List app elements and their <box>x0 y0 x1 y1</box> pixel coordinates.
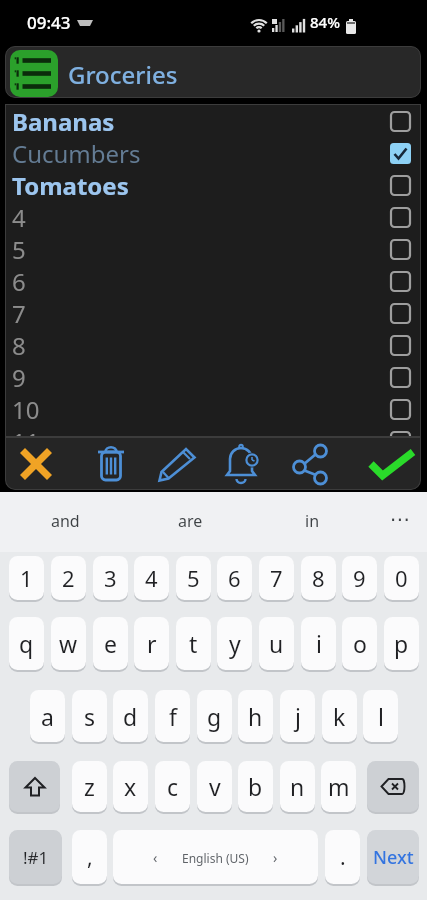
staticText: ⋯ <box>390 507 410 530</box>
button[interactable]: 7 <box>5 297 421 329</box>
staticText: 8 <box>12 329 26 361</box>
staticText: m <box>328 771 350 802</box>
button[interactable]: n <box>280 761 315 812</box>
button[interactable]: 6 <box>217 556 252 600</box>
button[interactable]: p <box>384 617 419 670</box>
button[interactable]: r <box>134 617 169 670</box>
staticText: n <box>290 771 305 802</box>
button[interactable]: !#1 <box>9 830 62 884</box>
button[interactable]: 6 <box>5 265 421 297</box>
button[interactable]: 5 <box>176 556 211 600</box>
staticText: j <box>295 701 301 732</box>
button[interactable]: u <box>259 617 294 670</box>
button[interactable]: Tomatoes <box>5 169 421 201</box>
staticText: d <box>123 701 138 732</box>
staticText: e <box>104 628 117 659</box>
staticText: c <box>167 771 179 802</box>
button[interactable]: q <box>9 617 44 670</box>
button[interactable]: ‹ <box>113 830 318 884</box>
button[interactable]: 8 <box>301 556 336 600</box>
button[interactable]: z <box>72 761 107 812</box>
staticText: in <box>305 510 320 532</box>
staticText: x <box>124 771 137 802</box>
staticText: 9 <box>12 361 26 393</box>
button[interactable]: j <box>280 690 315 742</box>
button[interactable]: m <box>321 761 356 812</box>
staticText: Tomatoes <box>12 169 129 201</box>
staticText: p <box>394 628 409 659</box>
button[interactable]: , <box>72 830 107 884</box>
button[interactable] <box>10 50 58 97</box>
staticText: k <box>333 701 346 732</box>
staticText: › <box>273 848 278 867</box>
button[interactable]: . <box>325 830 360 884</box>
button[interactable]: 3 <box>93 556 128 600</box>
staticText: 6 <box>12 265 26 297</box>
button[interactable]: t <box>176 617 211 670</box>
button[interactable]: x <box>113 761 148 812</box>
button[interactable]: g <box>197 690 232 742</box>
button[interactable]: k <box>322 690 357 742</box>
button[interactable]: 0 <box>384 556 419 600</box>
button[interactable]: y <box>217 617 252 670</box>
button[interactable] <box>9 761 60 812</box>
button[interactable] <box>366 437 418 490</box>
button[interactable]: Next <box>367 830 419 884</box>
button[interactable]: l <box>363 690 398 742</box>
button[interactable] <box>10 437 62 490</box>
button[interactable]: 10 <box>5 393 421 425</box>
button[interactable]: s <box>72 690 107 742</box>
staticText: 3 <box>104 563 117 593</box>
staticText: t <box>189 628 198 659</box>
button[interactable]: i <box>301 617 336 670</box>
button[interactable]: Bananas <box>5 105 421 137</box>
button[interactable]: 8 <box>5 329 421 361</box>
staticText: 4 <box>145 563 158 593</box>
button[interactable]: 1 <box>9 556 44 600</box>
staticText: ‹ <box>153 848 158 867</box>
staticText: 5 <box>12 233 26 265</box>
staticText: 9 <box>353 563 366 593</box>
button[interactable]: e <box>93 617 128 670</box>
button[interactable]: f <box>155 690 190 742</box>
button[interactable]: 4 <box>134 556 169 600</box>
button[interactable] <box>152 437 204 490</box>
staticText: Cucumbers <box>12 137 141 169</box>
button[interactable]: o <box>342 617 377 670</box>
staticText: i <box>316 628 322 659</box>
staticText: s <box>84 701 96 732</box>
button[interactable] <box>85 437 137 490</box>
button[interactable] <box>367 761 419 812</box>
button[interactable]: 9 <box>342 556 377 600</box>
staticText: English (US) <box>182 850 249 866</box>
button[interactable]: c <box>155 761 190 812</box>
staticText: 6 <box>228 563 241 593</box>
button[interactable] <box>5 46 421 98</box>
staticText: o <box>353 628 367 659</box>
button[interactable]: b <box>238 761 273 812</box>
button[interactable]: h <box>238 690 273 742</box>
button[interactable]: a <box>30 690 65 742</box>
staticText: h <box>248 701 263 732</box>
staticText: 09:43 <box>27 11 71 34</box>
staticText: a <box>41 701 54 732</box>
button[interactable]: v <box>197 761 232 812</box>
staticText: u <box>269 628 284 659</box>
button[interactable] <box>286 437 338 490</box>
staticText: 84% <box>310 12 340 32</box>
button[interactable]: d <box>113 690 148 742</box>
staticText: w <box>59 628 78 659</box>
button[interactable]: 5 <box>5 233 421 265</box>
button[interactable]: 4 <box>5 201 421 233</box>
button[interactable]: 2 <box>51 556 86 600</box>
button[interactable]: Cucumbers <box>5 137 421 169</box>
staticText: 5 <box>187 563 200 593</box>
staticText: 1 <box>20 563 33 593</box>
button[interactable] <box>216 437 268 490</box>
button[interactable]: w <box>51 617 86 670</box>
staticText: q <box>19 628 34 659</box>
button[interactable]: 11 <box>5 425 421 457</box>
staticText: , <box>87 843 93 872</box>
button[interactable]: 7 <box>259 556 294 600</box>
button[interactable]: 9 <box>5 361 421 393</box>
